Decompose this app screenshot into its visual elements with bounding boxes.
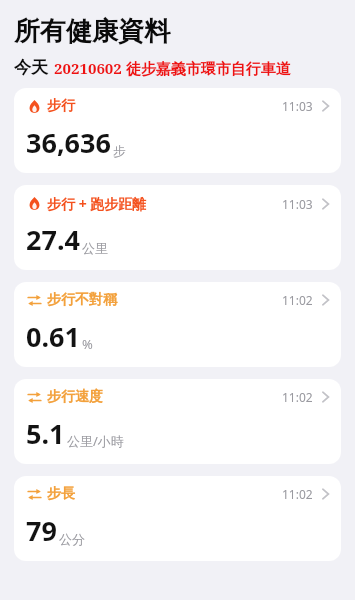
other: Walking metric <box>27 293 42 308</box>
staticText: 0.61 <box>26 318 80 355</box>
staticText: 11:03 <box>282 98 313 114</box>
staticText: 步 <box>113 143 126 159</box>
staticText: 步長 <box>47 485 75 503</box>
staticText: 公里/小時 <box>67 432 124 450</box>
staticText: 11:03 <box>282 196 313 212</box>
staticText: 11:02 <box>282 389 313 405</box>
staticText: 今天 <box>14 57 48 78</box>
button[interactable]: Walking metric <box>14 282 341 367</box>
other: Flame <box>28 197 41 210</box>
staticText: 公里 <box>82 240 108 256</box>
button[interactable]: Walking metric <box>14 476 341 561</box>
staticText: 步行不對稱 <box>47 291 117 309</box>
other: Walking metric <box>27 487 42 502</box>
staticText: 36,636 <box>26 124 111 161</box>
other: Walking metric <box>27 390 42 405</box>
staticText: 步行速度 <box>47 388 103 406</box>
staticText: 11:02 <box>282 292 313 308</box>
staticText: 步行 + 跑步距離 <box>47 194 147 213</box>
staticText: 5.1 <box>26 415 65 452</box>
staticText: 公分 <box>59 531 85 547</box>
staticText: 11:02 <box>282 486 313 502</box>
staticText: % <box>82 335 93 353</box>
button[interactable]: Flame <box>14 88 341 173</box>
other: Flame <box>28 100 41 113</box>
staticText: 步行 <box>47 97 75 115</box>
button[interactable]: Flame <box>14 185 341 270</box>
button[interactable]: Walking metric <box>14 379 341 464</box>
staticText: 所有健康資料 <box>14 15 170 48</box>
staticText: 27.4 <box>26 221 80 258</box>
staticText: 79 <box>26 512 57 549</box>
staticText: 20210602 徒步嘉義市環市自行車道 <box>54 58 291 78</box>
